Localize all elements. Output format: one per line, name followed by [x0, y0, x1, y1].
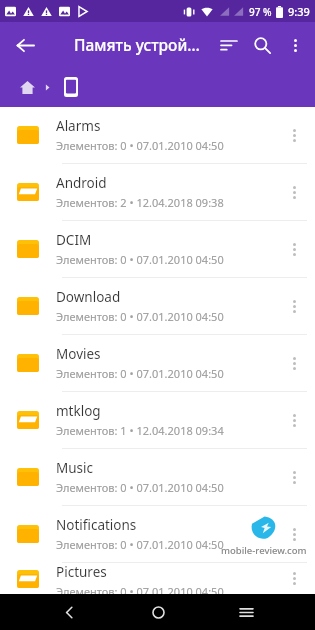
button[interactable]: Home — [138, 594, 178, 630]
button[interactable]: DCIM — [0, 221, 315, 277]
staticText: Элементов: 0 • 07.01.2010 04:50 — [56, 252, 224, 267]
button[interactable]: Recent apps — [226, 594, 266, 630]
staticText: Элементов: 0 • 07.01.2010 04:50 — [56, 480, 224, 495]
button[interactable]: Item options — [277, 175, 311, 209]
staticText: Элементов: 0 • 07.01.2010 04:50 — [56, 366, 224, 381]
button[interactable]: Item options — [277, 403, 311, 437]
staticText: Элементов: 0 • 07.01.2010 04:50 — [56, 138, 224, 153]
button[interactable]: Notifications — [0, 506, 315, 562]
staticText: Элементов: 0 • 07.01.2010 04:50 — [56, 584, 224, 594]
staticText: Movies — [56, 345, 101, 363]
button[interactable]: Android — [0, 164, 315, 220]
staticText: Notifications — [56, 516, 137, 534]
button[interactable]: Item options — [277, 517, 311, 551]
button[interactable]: Music — [0, 449, 315, 505]
staticText: Download — [56, 288, 121, 306]
staticText: 9:39 — [288, 4, 310, 19]
button[interactable]: Item options — [277, 460, 311, 494]
button[interactable]: Pictures — [0, 563, 315, 594]
button[interactable]: Back — [8, 28, 42, 62]
staticText: Элементов: 1 • 12.04.2018 09:34 — [56, 423, 224, 438]
staticText: DCIM — [56, 231, 92, 249]
staticText: Элементов: 0 • 07.01.2010 04:50 — [56, 537, 224, 552]
button[interactable]: Back — [49, 594, 89, 630]
staticText: Элементов: 2 • 12.04.2018 09:38 — [56, 195, 224, 210]
button[interactable]: Search — [245, 28, 279, 62]
staticText: Память устрой… — [74, 34, 200, 55]
staticText: Pictures — [56, 563, 107, 581]
staticText: 97 % — [249, 5, 272, 19]
button[interactable]: Movies — [0, 335, 315, 391]
button[interactable]: mtklog — [0, 392, 315, 448]
staticText: mobile-review.com — [221, 544, 307, 557]
staticText: Music — [56, 459, 94, 477]
button[interactable]: More options — [279, 29, 311, 61]
staticText: mtklog — [56, 402, 101, 420]
button[interactable]: Alarms — [0, 107, 315, 163]
button[interactable]: Home — [14, 74, 40, 100]
button[interactable]: Item options — [277, 289, 311, 323]
button[interactable]: Item options — [277, 346, 311, 380]
button[interactable]: Item options — [277, 232, 311, 266]
button[interactable]: Device storage — [57, 73, 85, 101]
button[interactable]: Item options — [277, 118, 311, 152]
staticText: Android — [56, 174, 107, 192]
button[interactable]: Sort — [213, 29, 245, 61]
staticText: Элементов: 0 • 07.01.2010 04:50 — [56, 309, 224, 324]
button[interactable]: Download — [0, 278, 315, 334]
button[interactable]: Item options — [277, 563, 311, 594]
staticText: Alarms — [56, 117, 101, 135]
